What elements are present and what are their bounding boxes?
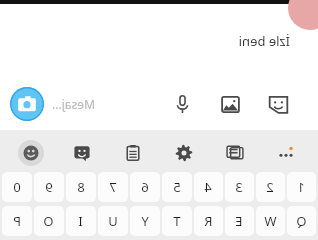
button[interactable]: 5 xyxy=(162,172,192,202)
button[interactable]: 3 xyxy=(225,172,254,202)
button[interactable]: 1 xyxy=(287,172,316,202)
staticText: E xyxy=(235,212,243,230)
button[interactable]: Settings xyxy=(159,134,210,172)
button[interactable]: 4 xyxy=(194,172,223,202)
staticText: I xyxy=(78,212,83,230)
staticText: 3 xyxy=(235,178,243,196)
button[interactable]: P xyxy=(2,206,32,236)
staticText: 9 xyxy=(45,178,53,196)
staticText: 4 xyxy=(204,178,212,196)
staticText: P xyxy=(13,212,21,230)
button[interactable]: Clipboard xyxy=(108,134,159,172)
staticText: Q xyxy=(296,212,307,230)
button[interactable]: Clipboard cards xyxy=(210,134,261,172)
button[interactable]: Q xyxy=(287,206,316,236)
button[interactable]: Camera xyxy=(10,87,44,121)
staticText: Y xyxy=(141,212,149,230)
staticText: 6 xyxy=(141,178,149,196)
button[interactable]: More options xyxy=(261,134,312,172)
staticText: W xyxy=(264,212,277,230)
staticText: T xyxy=(173,212,181,230)
staticText: 5 xyxy=(173,178,181,196)
button[interactable]: I xyxy=(66,206,96,236)
button[interactable]: U xyxy=(98,206,128,236)
staticText: 8 xyxy=(77,178,85,196)
staticText: 0 xyxy=(13,178,21,196)
staticText: U xyxy=(108,212,118,230)
staticText: 7 xyxy=(109,178,117,196)
staticText: 1 xyxy=(297,178,305,196)
button[interactable]: Stickers xyxy=(264,89,294,119)
button[interactable]: Y xyxy=(130,206,160,236)
button[interactable]: T xyxy=(162,206,192,236)
button[interactable]: 8 xyxy=(66,172,96,202)
staticText: O xyxy=(43,212,54,230)
button[interactable]: 0 xyxy=(2,172,32,202)
button[interactable]: Voice message xyxy=(168,89,198,119)
button[interactable]: Profile photo xyxy=(288,0,318,30)
staticText: R xyxy=(204,212,213,230)
button[interactable]: Gallery xyxy=(216,89,246,119)
staticText: 2 xyxy=(266,178,274,196)
button[interactable]: E xyxy=(225,206,254,236)
button[interactable]: O xyxy=(34,206,64,236)
staticText: Mesaj... xyxy=(52,96,95,112)
button[interactable]: 9 xyxy=(34,172,64,202)
button[interactable]: Emoji xyxy=(6,134,57,172)
button[interactable]: 6 xyxy=(130,172,160,202)
button[interactable]: 7 xyxy=(98,172,128,202)
button[interactable]: R xyxy=(194,206,223,236)
button[interactable]: W xyxy=(256,206,285,236)
button[interactable]: GIF stickers xyxy=(57,134,108,172)
button[interactable]: 2 xyxy=(256,172,285,202)
staticText: İzle beni xyxy=(238,32,290,50)
